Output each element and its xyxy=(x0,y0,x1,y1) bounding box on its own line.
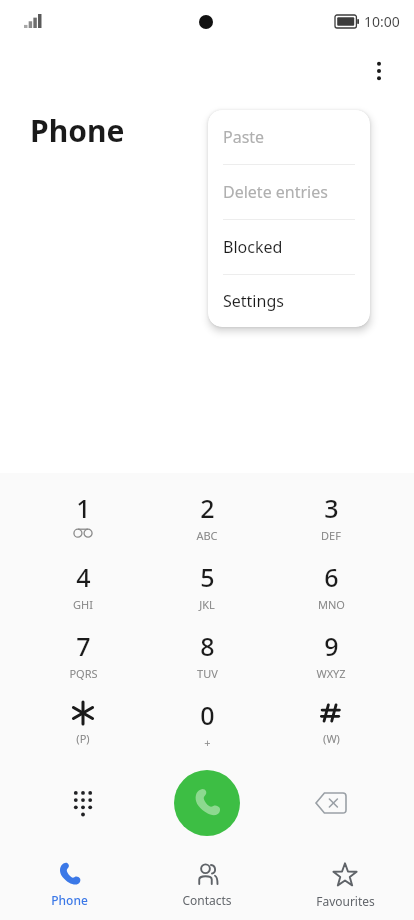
staticText: PQRS xyxy=(69,666,98,681)
button[interactable]: 0 xyxy=(163,698,251,758)
staticText: 9 xyxy=(324,629,339,663)
staticText: (P) xyxy=(76,731,90,746)
staticText: 1 xyxy=(76,491,91,525)
button[interactable]: Keypad xyxy=(57,777,109,829)
staticText: 8 xyxy=(200,629,215,663)
button[interactable]: 9 xyxy=(287,629,375,689)
button[interactable]: 1 xyxy=(39,491,127,551)
staticText: TUV xyxy=(197,666,218,681)
staticText: 10:00 xyxy=(364,12,400,31)
staticText: 0 xyxy=(200,698,215,732)
button[interactable]: 5 xyxy=(163,560,251,620)
button[interactable]: 6 xyxy=(287,560,375,620)
staticText: 3 xyxy=(324,491,339,525)
button[interactable]: Settings xyxy=(208,275,370,327)
staticText: + xyxy=(204,735,211,750)
staticText: WXYZ xyxy=(316,666,346,681)
button[interactable]: 2 xyxy=(163,491,251,551)
staticText: 5 xyxy=(200,560,215,594)
staticText: Settings xyxy=(223,290,284,312)
staticText: Contacts xyxy=(182,892,232,908)
button[interactable]: Delete entries xyxy=(208,165,370,219)
button[interactable]: Phone xyxy=(0,852,138,920)
staticText: JKL xyxy=(199,597,215,612)
staticText: 4 xyxy=(76,560,91,594)
staticText: Delete entries xyxy=(223,181,328,203)
button[interactable]: 7 xyxy=(39,629,127,689)
staticText: MNO xyxy=(318,597,345,612)
staticText: Phone xyxy=(51,892,88,908)
button[interactable]: 4 xyxy=(39,560,127,620)
staticText: DEF xyxy=(321,528,341,543)
button[interactable]: (W) xyxy=(287,698,375,758)
staticText: Favourites xyxy=(316,893,375,909)
button[interactable]: Contacts xyxy=(138,852,276,920)
staticText: GHI xyxy=(73,597,93,612)
staticText: 6 xyxy=(324,560,339,594)
button[interactable]: More options xyxy=(357,49,401,93)
staticText: Blocked xyxy=(223,236,283,258)
staticText: 2 xyxy=(200,491,215,525)
button[interactable]: Blocked xyxy=(208,220,370,274)
button[interactable]: 8 xyxy=(163,629,251,689)
staticText: Paste xyxy=(223,126,265,148)
staticText: ABC xyxy=(196,528,218,543)
staticText: 7 xyxy=(76,629,91,663)
staticText: Phone xyxy=(30,110,125,151)
button[interactable]: (P) xyxy=(39,698,127,758)
button[interactable]: Call xyxy=(174,770,240,836)
staticText: (W) xyxy=(323,731,340,746)
button[interactable]: Paste xyxy=(208,110,370,164)
button[interactable]: 3 xyxy=(287,491,375,551)
button[interactable]: Backspace xyxy=(303,777,359,829)
button[interactable]: Favourites xyxy=(276,852,414,920)
